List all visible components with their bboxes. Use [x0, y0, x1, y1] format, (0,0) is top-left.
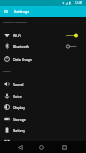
- button[interactable]: Apps: [0, 136, 86, 148]
- button[interactable]: Home: [30, 141, 53, 153]
- button[interactable]: Storage: [0, 113, 86, 125]
- staticText: Wi-Fi: [13, 33, 22, 38]
- staticText: 12:00: [75, 1, 83, 5]
- button[interactable]: Recent apps: [53, 141, 76, 153]
- staticText: Sound: [13, 82, 24, 87]
- button[interactable]: Back: [9, 141, 32, 153]
- button[interactable]: Battery: [0, 124, 86, 136]
- button[interactable]: Open navigation menu: [0, 6, 12, 17]
- button[interactable]: Toggle Bluetooth: [66, 40, 78, 52]
- button[interactable]: Wi-Fi: [0, 29, 86, 41]
- staticText: Voice: [13, 94, 22, 99]
- staticText: Bluetooth: [13, 44, 30, 49]
- staticText: Apps: [13, 140, 22, 145]
- button[interactable]: Toggle Wi-Fi: [66, 29, 78, 41]
- staticText: Display: [13, 105, 25, 110]
- staticText: Data Usage: [13, 57, 32, 62]
- button[interactable]: Bluetooth: [0, 40, 86, 52]
- button[interactable]: Data Usage: [0, 53, 86, 65]
- staticText: Device: [3, 69, 11, 72]
- staticText: Battery: [13, 128, 25, 133]
- staticText: Wireless & networks: [3, 20, 27, 23]
- button[interactable]: Voice: [0, 90, 86, 102]
- staticText: Storage: [13, 117, 26, 122]
- button[interactable]: Display: [0, 101, 86, 113]
- staticText: Settings: [14, 9, 30, 14]
- button[interactable]: Sound: [0, 78, 86, 90]
